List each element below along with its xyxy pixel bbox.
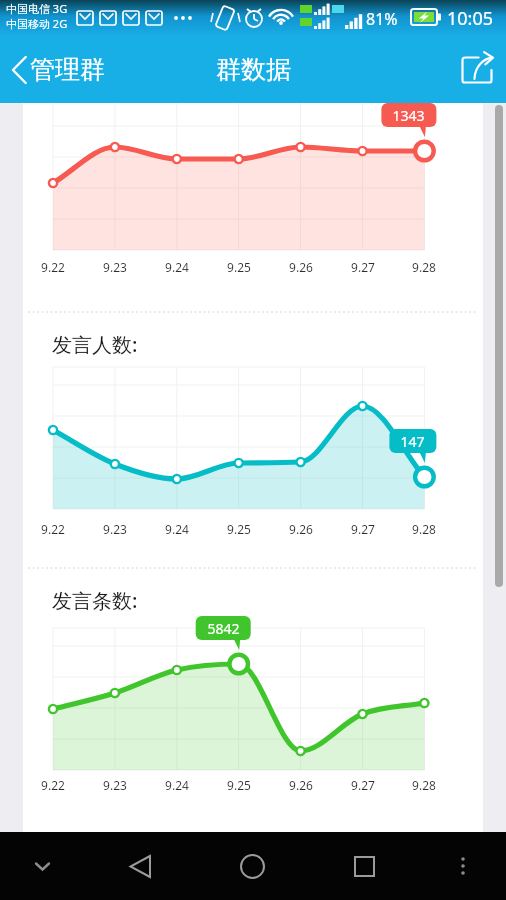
staticText: 9.22	[28, 521, 78, 537]
staticText: 81%	[366, 8, 398, 30]
staticText: 9.27	[338, 259, 388, 275]
staticText: 9.23	[90, 777, 140, 793]
staticText: 9.26	[276, 777, 326, 793]
button[interactable]: Back	[84, 832, 196, 900]
button[interactable]: More options	[420, 832, 506, 900]
button[interactable]: Hide keyboard	[0, 832, 84, 900]
staticText: 9.27	[338, 521, 388, 537]
staticText: 9.23	[90, 259, 140, 275]
staticText: 中国移动 2G	[6, 16, 68, 31]
staticText: 群数据	[216, 54, 291, 85]
staticText: 9.22	[28, 259, 78, 275]
button[interactable]: 发言条数图表	[23, 569, 483, 832]
staticText: 9.25	[214, 521, 264, 537]
button[interactable]: Home	[196, 832, 308, 900]
staticText: 9.24	[152, 777, 202, 793]
staticText: 5842	[207, 619, 240, 638]
staticText: 9.28	[399, 259, 449, 275]
staticText: 9.22	[28, 777, 78, 793]
staticText: 9.24	[152, 521, 202, 537]
staticText: 管理群	[30, 54, 105, 85]
staticText: 9.28	[399, 521, 449, 537]
button[interactable]: 活跃人数图表	[23, 103, 483, 312]
staticText: 1343	[392, 106, 425, 125]
staticText: 9.26	[276, 521, 326, 537]
staticText: 147	[400, 432, 425, 451]
staticText: 9.23	[90, 521, 140, 537]
staticText: 发言条数:	[52, 587, 138, 614]
staticText: 9.24	[152, 259, 202, 275]
button[interactable]: 发言人数图表	[23, 313, 483, 568]
staticText: 10:05	[447, 6, 494, 31]
button[interactable]: 管理群	[0, 44, 119, 95]
button[interactable]: Share	[449, 44, 506, 96]
staticText: 9.28	[399, 777, 449, 793]
staticText: 9.25	[214, 777, 264, 793]
staticText: 9.26	[276, 259, 326, 275]
staticText: 9.25	[214, 259, 264, 275]
staticText: 9.27	[338, 777, 388, 793]
staticText: 中国电信 3G	[6, 1, 68, 16]
staticText: 发言人数:	[52, 331, 138, 358]
button[interactable]: Recent apps	[308, 832, 420, 900]
